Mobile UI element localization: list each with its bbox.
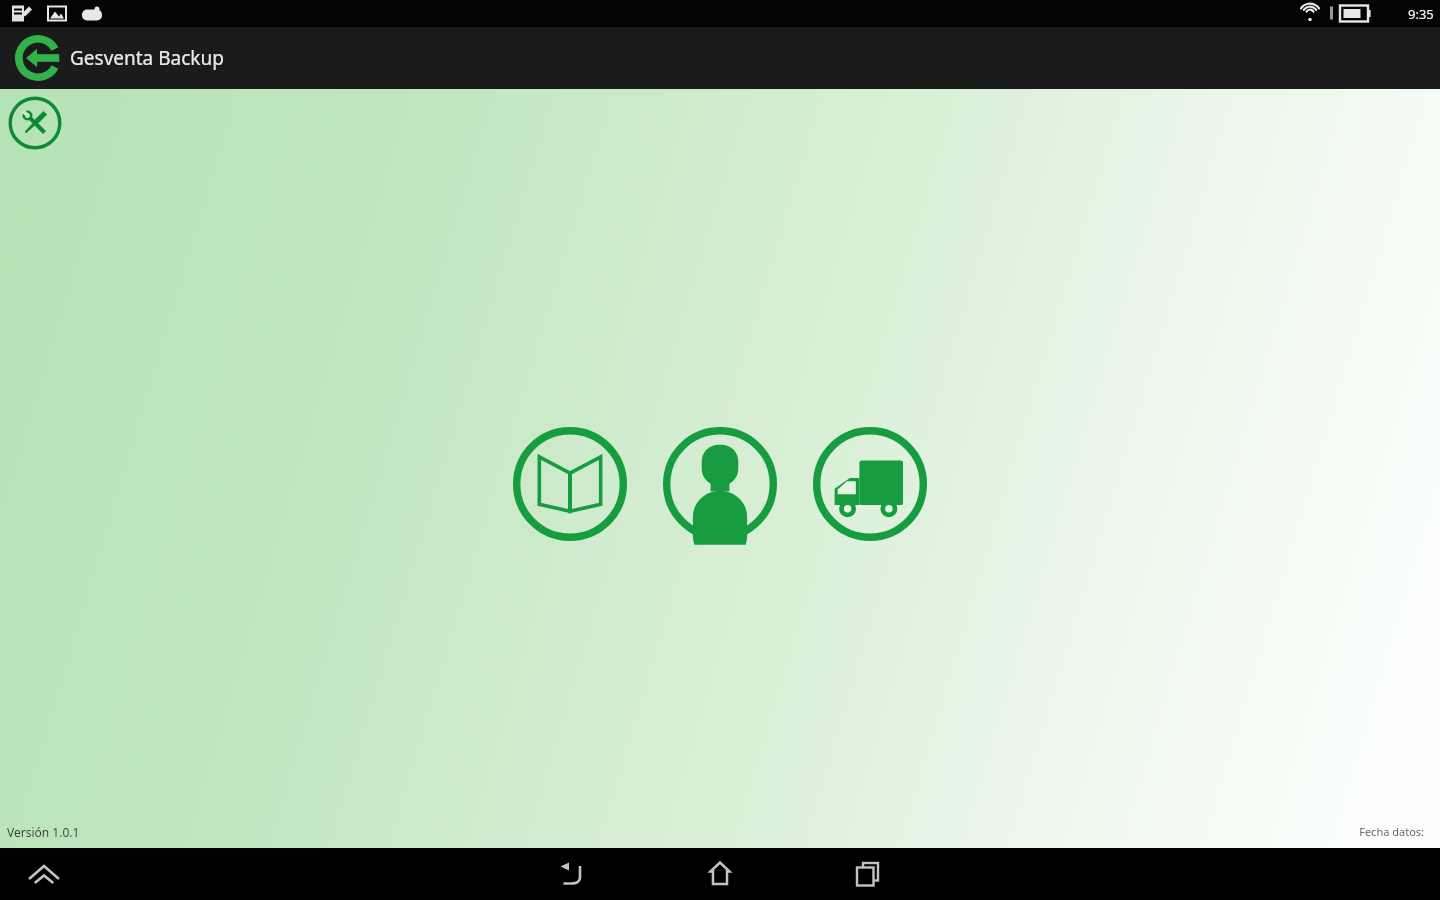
button[interactable]: Back [541, 848, 603, 900]
button[interactable]: Settings / tools [7, 95, 63, 151]
button[interactable]: Home [689, 848, 751, 900]
button[interactable]: Rutas [811, 425, 929, 543]
staticText: Versión 1.0.1 [7, 824, 80, 840]
button[interactable]: Artículos [511, 425, 629, 543]
staticText: Gesventa Backup [70, 45, 224, 71]
button[interactable]: Clientes [661, 425, 779, 543]
staticText: 9:35 [1408, 5, 1434, 23]
button[interactable]: Gesventa logo [14, 34, 62, 82]
staticText: Fecha datos: [1359, 824, 1424, 839]
button[interactable]: Recent apps [837, 848, 899, 900]
button[interactable]: Expand [16, 848, 72, 900]
